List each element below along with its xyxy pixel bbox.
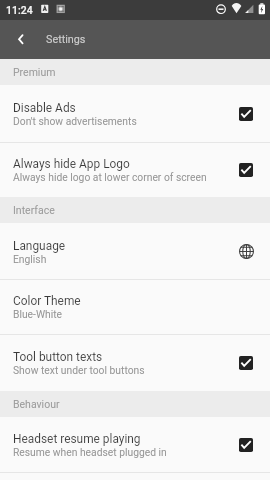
staticText: Disable Ads xyxy=(13,101,76,115)
staticText: English xyxy=(13,253,47,265)
staticText: Tool button texts xyxy=(13,350,103,364)
button[interactable]: Toggle Disable Ads xyxy=(239,107,253,121)
button[interactable]: Back xyxy=(0,20,40,59)
button[interactable]: Color Theme xyxy=(0,279,270,334)
button[interactable]: Toggle Always hide App Logo xyxy=(239,163,253,177)
staticText: Headset resume playing xyxy=(13,432,141,446)
staticText: Settings xyxy=(46,33,86,46)
button[interactable]: Toggle Headset resume playing xyxy=(239,438,253,452)
staticText: Don't show advertisements xyxy=(13,115,137,127)
staticText: Color Theme xyxy=(13,294,81,308)
button[interactable]: Language xyxy=(0,223,270,279)
button[interactable]: Toggle Tool button texts xyxy=(239,356,253,370)
staticText: Behaviour xyxy=(13,398,60,410)
staticText: Resume when headset plugged in xyxy=(13,446,167,458)
staticText: Interface xyxy=(13,204,55,216)
staticText: Language xyxy=(13,239,66,253)
staticText: Always hide logo at lower corner of scre… xyxy=(13,171,207,183)
button[interactable]: Tool button texts xyxy=(0,334,270,391)
staticText: Blue-White xyxy=(13,308,63,320)
staticText: 11:24 xyxy=(6,4,33,16)
staticText: Always hide App Logo xyxy=(13,157,130,171)
staticText: Show text under tool buttons xyxy=(13,364,145,376)
button[interactable]: Headset resume playing xyxy=(0,417,270,472)
button[interactable]: Always hide App Logo xyxy=(0,142,270,197)
button[interactable]: Change language xyxy=(239,244,254,259)
staticText: Premium xyxy=(13,66,56,78)
button[interactable]: Disable Ads xyxy=(0,85,270,142)
